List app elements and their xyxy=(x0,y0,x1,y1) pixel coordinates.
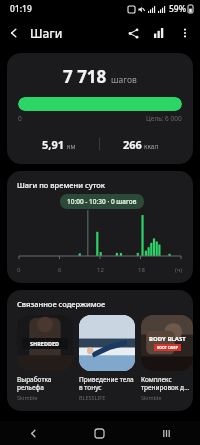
staticText: BLESSLIFE xyxy=(79,394,106,401)
staticText: BODY BLAST xyxy=(149,335,186,343)
staticText: 5,91 xyxy=(42,137,65,152)
staticText: Skimble xyxy=(141,394,162,401)
staticText: 18 xyxy=(138,266,145,274)
button[interactable]: 7 718 xyxy=(7,53,193,164)
staticText: ккал xyxy=(144,142,159,151)
staticText: 0 xyxy=(17,266,21,274)
button[interactable]: SHREDDED xyxy=(17,315,73,401)
button[interactable]: Statistics xyxy=(146,20,172,46)
button[interactable]: Приведение тела в тонус xyxy=(79,315,135,401)
button[interactable]: More options xyxy=(172,20,198,46)
staticText: Skimble xyxy=(17,394,38,401)
staticText: 6 xyxy=(58,266,62,274)
staticText: 01:19 xyxy=(10,3,32,15)
staticText: (ч) xyxy=(175,266,183,274)
staticText: 266 xyxy=(123,137,142,152)
staticText: км xyxy=(67,142,76,151)
staticText: 7 718 xyxy=(63,65,107,88)
staticText: 59% xyxy=(169,3,186,15)
button[interactable]: Back xyxy=(0,19,28,47)
staticText: 0 xyxy=(18,114,22,123)
staticText: 10:00 - 10:30 · 0 шагов xyxy=(67,197,137,206)
button[interactable]: BODY BLAST xyxy=(141,315,193,401)
button[interactable]: Back xyxy=(0,421,66,445)
button[interactable]: Home xyxy=(66,421,133,445)
staticText: Комплекс тренировок для б... xyxy=(141,375,193,392)
staticText: Выработка рельефа xyxy=(17,375,73,392)
button[interactable]: Recent apps xyxy=(133,421,200,445)
staticText: Шаги xyxy=(30,25,63,41)
staticText: Шаги по времени суток xyxy=(17,180,105,190)
staticText: BOOT CAMP xyxy=(157,345,178,350)
staticText: Цель: 6 000 xyxy=(146,114,182,123)
staticText: 12 xyxy=(97,266,104,274)
button[interactable]: Шаги по времени суток xyxy=(7,171,193,283)
button[interactable]: Share xyxy=(120,20,146,46)
staticText: Связанное содержимое xyxy=(17,299,106,309)
staticText: SHREDDED xyxy=(30,340,60,347)
staticText: шагов xyxy=(111,74,137,86)
staticText: Приведение тела в тонус xyxy=(79,375,135,392)
